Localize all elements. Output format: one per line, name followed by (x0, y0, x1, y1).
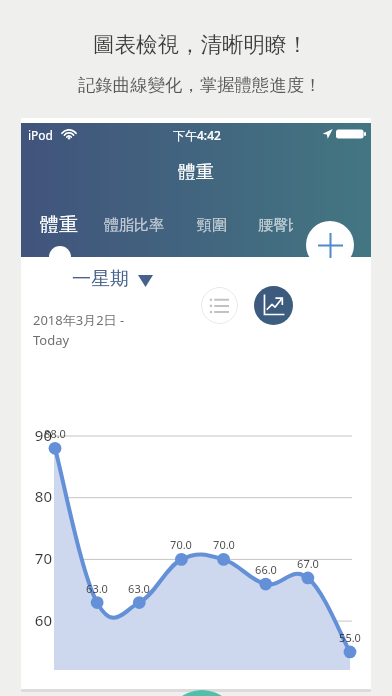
staticText: 圖表檢視，清晰明瞭！ (93, 31, 308, 58)
button[interactable]: Chart view (254, 286, 293, 325)
button[interactable]: 一星期 (72, 267, 153, 291)
staticText: 2018年3月2日 - Today (33, 311, 125, 349)
button[interactable]: 體重 (40, 213, 78, 237)
staticText: 一星期 (72, 267, 129, 291)
staticText: 90 (14, 425, 52, 445)
button[interactable]: List view (201, 287, 238, 324)
staticText: 下午4:42 (173, 127, 221, 143)
staticText: 55.0 (330, 630, 370, 645)
staticText: 88.0 (35, 426, 75, 441)
staticText: 80 (14, 486, 52, 506)
button[interactable]: 體脂比率 (104, 216, 164, 235)
button[interactable]: 腰臀比 (258, 216, 293, 235)
button[interactable]: Add entry (306, 221, 354, 269)
staticText: 體重 (0, 161, 392, 184)
staticText: 頸圍 (197, 216, 227, 235)
staticText: 腰臀比 (258, 216, 293, 235)
staticText: iPod (28, 127, 53, 143)
staticText: 70.0 (161, 537, 201, 552)
staticText: 67.0 (288, 556, 328, 571)
staticText: 63.0 (119, 581, 159, 596)
staticText: 70.0 (204, 537, 244, 552)
staticText: 70 (14, 548, 52, 568)
staticText: 記錄曲線變化，掌握體態進度！ (78, 74, 322, 96)
button[interactable]: 頸圍 (197, 216, 227, 235)
staticText: 體脂比率 (104, 216, 164, 235)
staticText: 體重 (40, 213, 78, 237)
staticText: 63.0 (77, 581, 117, 596)
staticText: 60 (14, 610, 52, 630)
staticText: 66.0 (246, 562, 286, 577)
